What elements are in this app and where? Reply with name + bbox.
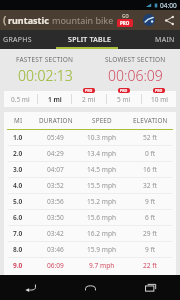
staticText: 9.0 bbox=[13, 261, 23, 270]
button[interactable]: SPLIT TABLE bbox=[58, 30, 122, 49]
staticText: 03:42 bbox=[47, 229, 64, 238]
staticText: SLOWEST SECTION bbox=[105, 55, 166, 64]
staticText: SPEED bbox=[92, 116, 112, 125]
button[interactable]: 5 mi bbox=[107, 91, 141, 107]
staticText: 4.0 bbox=[13, 181, 23, 190]
staticText: 16.2 mph bbox=[87, 229, 117, 238]
staticText: 0.5 mi bbox=[11, 95, 30, 104]
staticText: 03:46 bbox=[47, 245, 64, 254]
staticText: ELEVATION bbox=[133, 116, 168, 125]
staticText: mountain bike bbox=[52, 14, 114, 26]
staticText: 9.7 mph bbox=[89, 261, 115, 270]
button[interactable]: Home bbox=[60, 275, 120, 300]
staticText: PRO bbox=[155, 88, 163, 93]
staticText: 9 ft bbox=[145, 197, 156, 206]
button[interactable]: 9.0 bbox=[4, 258, 176, 273]
staticText: 9 ft bbox=[145, 245, 156, 254]
button[interactable]: Share bbox=[161, 12, 177, 28]
staticText: 03:52 bbox=[47, 181, 64, 190]
staticText: 15.2 mph bbox=[87, 197, 117, 206]
button[interactable]: 2.0 bbox=[4, 146, 176, 161]
staticText: 15.6 mph bbox=[87, 213, 117, 222]
staticText: 29 ft bbox=[143, 229, 157, 238]
staticText: 2 mi bbox=[82, 95, 96, 104]
button[interactable]: 3.0 bbox=[4, 162, 176, 177]
staticText: 1 mi bbox=[48, 95, 62, 104]
button[interactable]: 1 mi bbox=[38, 91, 71, 107]
staticText: 6.0 bbox=[13, 213, 23, 222]
staticText: 05:49 bbox=[47, 133, 64, 142]
staticText: 13.4 mph bbox=[87, 149, 117, 158]
staticText: 22 ft bbox=[143, 261, 157, 270]
staticText: GRAPHS bbox=[3, 35, 32, 45]
staticText: 04:07 bbox=[47, 165, 64, 174]
button[interactable]: 10 mi bbox=[142, 91, 176, 107]
staticText: ( bbox=[3, 13, 7, 27]
staticText: 7.0 bbox=[13, 229, 23, 238]
staticText: 15.5 mph bbox=[87, 181, 117, 190]
button[interactable]: 1.0 bbox=[4, 130, 176, 145]
staticText: 0 ft bbox=[145, 149, 156, 158]
button[interactable]: Go Pro bbox=[115, 13, 135, 27]
button[interactable]: 0.5 mi bbox=[4, 91, 37, 107]
staticText: PRO bbox=[85, 88, 93, 93]
staticText: DURATION bbox=[39, 116, 73, 125]
staticText: GO bbox=[122, 13, 129, 19]
staticText: 06:09 bbox=[47, 261, 64, 270]
staticText: 5 mi bbox=[117, 95, 131, 104]
staticText: 2.0 bbox=[13, 149, 23, 158]
staticText: 15.9 mph bbox=[87, 245, 117, 254]
staticText: 6 ft bbox=[145, 213, 156, 222]
button[interactable]: 4.0 bbox=[4, 178, 176, 193]
staticText: 03:56 bbox=[47, 197, 64, 206]
staticText: SPLIT TABLE bbox=[68, 35, 112, 45]
button[interactable]: 2 mi bbox=[72, 91, 106, 107]
button[interactable]: 8.0 bbox=[4, 242, 176, 257]
staticText: 16 ft bbox=[143, 165, 157, 174]
button[interactable]: 5.0 bbox=[4, 194, 176, 209]
staticText: 10 mi bbox=[151, 95, 168, 104]
staticText: runtastic bbox=[8, 14, 49, 26]
button[interactable]: Map bbox=[141, 12, 157, 28]
staticText: 10.3 mph bbox=[87, 133, 117, 142]
button[interactable]: Back bbox=[0, 275, 60, 300]
staticText: 1.0 bbox=[13, 133, 23, 142]
staticText: 32 ft bbox=[143, 181, 157, 190]
staticText: MI bbox=[14, 116, 23, 125]
staticText: 52 ft bbox=[143, 133, 157, 142]
button[interactable]: 6.0 bbox=[4, 210, 176, 225]
button[interactable]: 7.0 bbox=[4, 226, 176, 241]
staticText: PRO bbox=[120, 88, 128, 93]
staticText: 04:00 bbox=[160, 1, 177, 10]
staticText: 5.0 bbox=[13, 197, 23, 206]
button[interactable]: MAIN bbox=[122, 30, 180, 49]
staticText: 14.5 mph bbox=[87, 165, 117, 174]
staticText: 8.0 bbox=[13, 245, 23, 254]
staticText: 00:06:09 bbox=[108, 66, 163, 85]
staticText: MAIN bbox=[155, 35, 175, 45]
staticText: 00:02:13 bbox=[18, 66, 73, 85]
staticText: PRO bbox=[120, 20, 130, 26]
staticText: 03:50 bbox=[47, 213, 64, 222]
button[interactable]: GRAPHS bbox=[0, 30, 58, 49]
button[interactable]: Recent apps bbox=[120, 275, 180, 300]
staticText: FASTEST SECTION bbox=[16, 55, 74, 64]
staticText: 3.0 bbox=[13, 165, 23, 174]
staticText: 04:29 bbox=[47, 149, 64, 158]
